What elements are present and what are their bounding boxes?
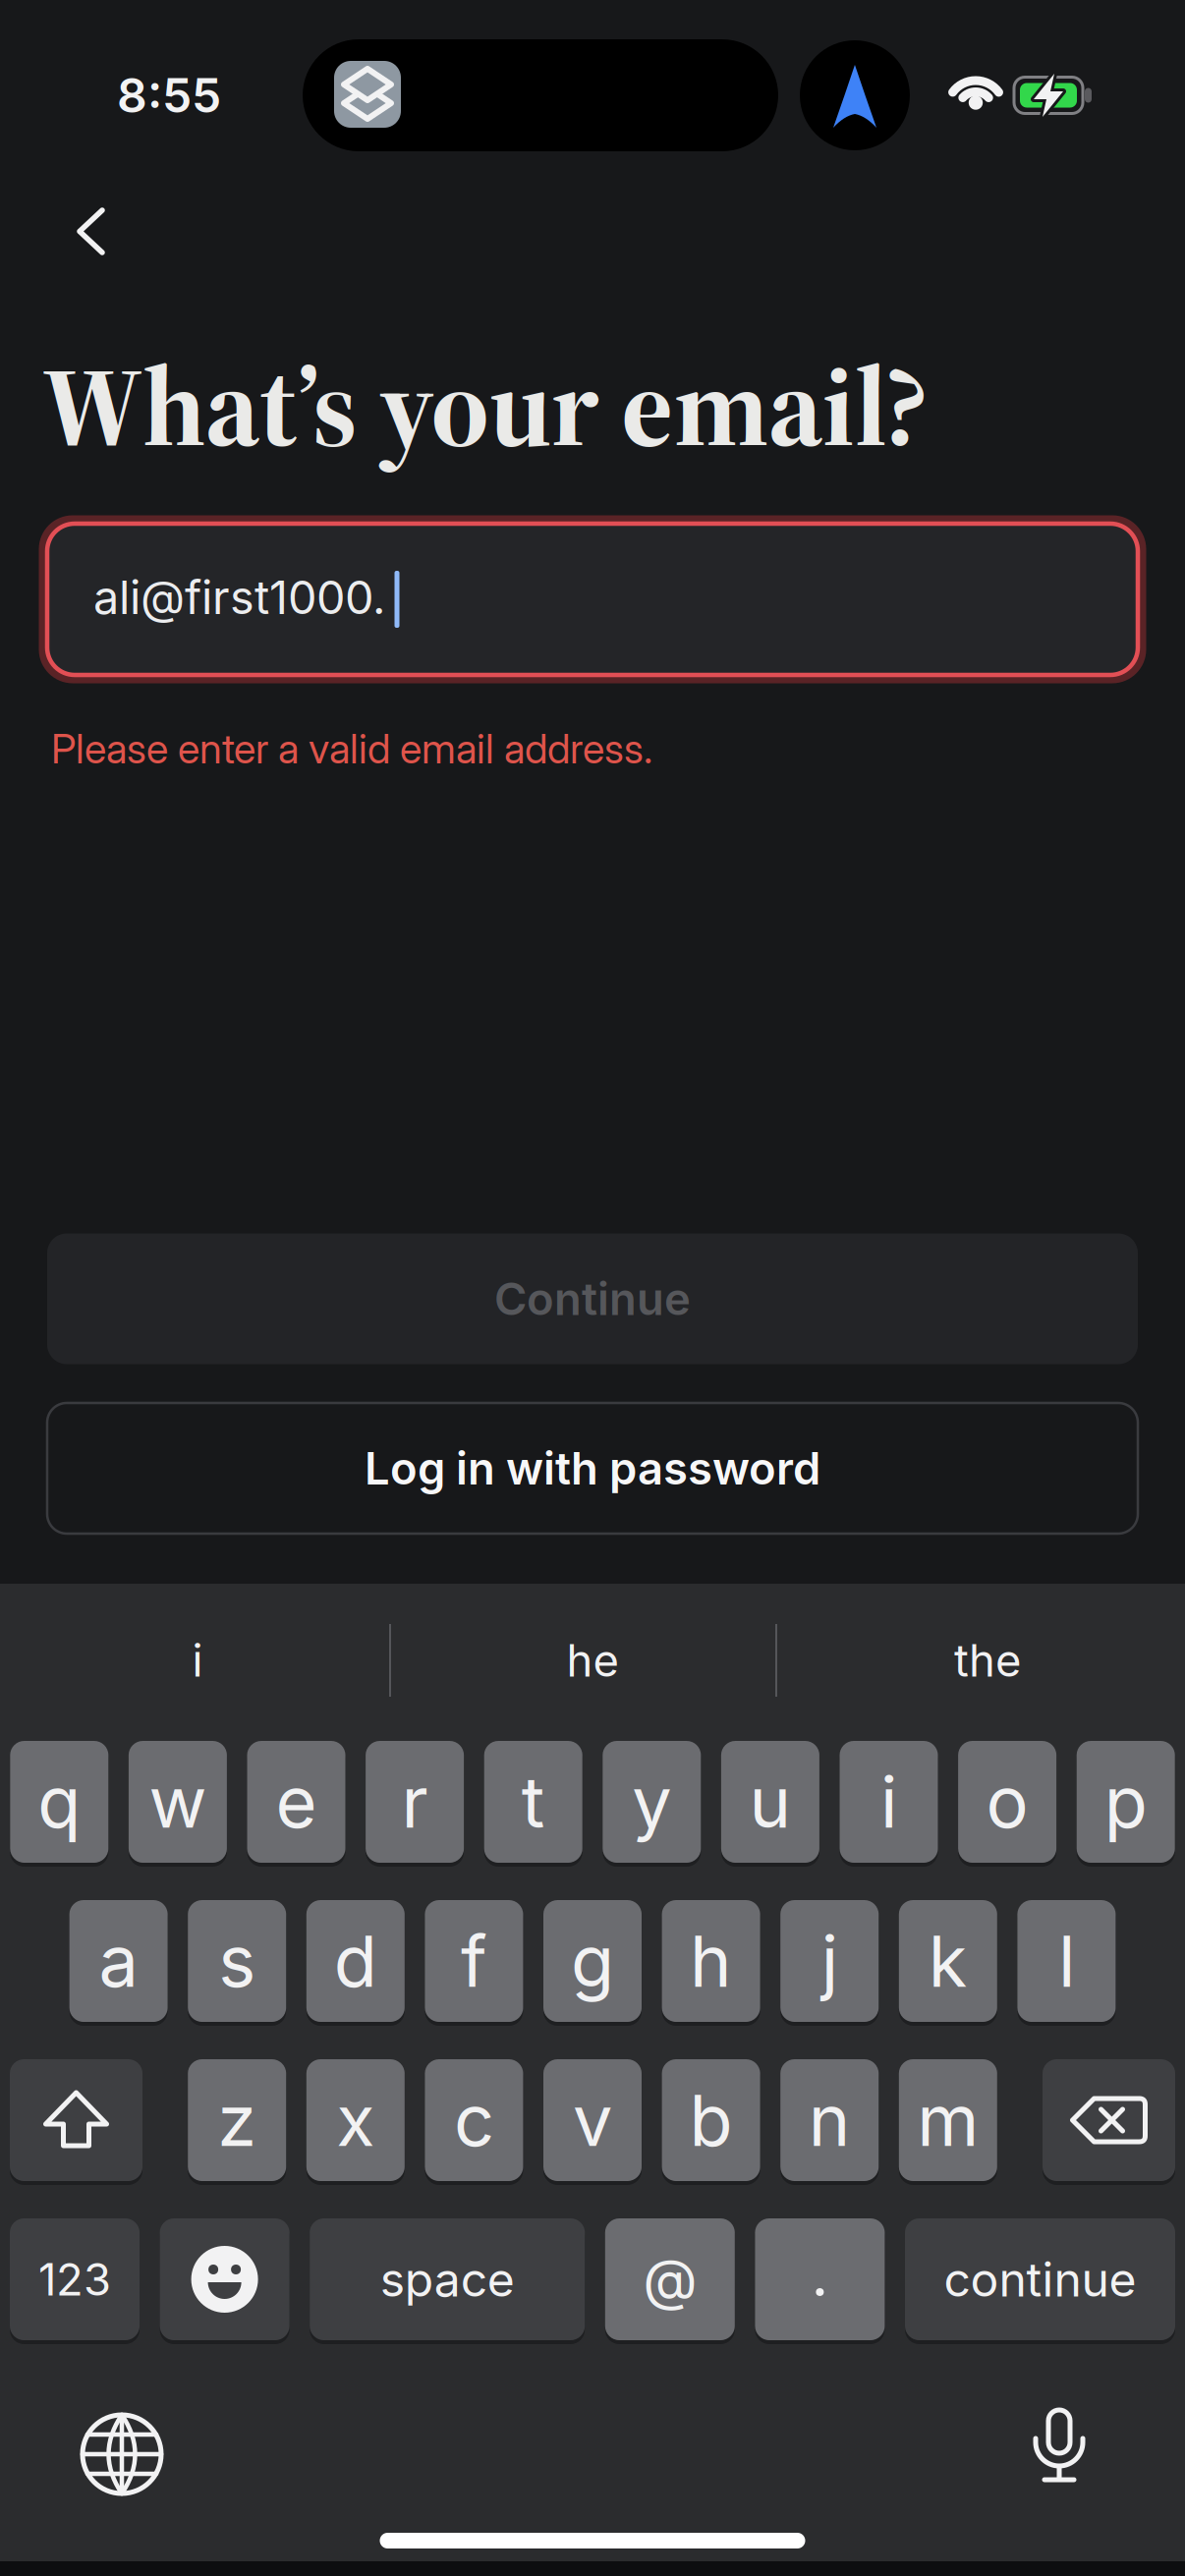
button[interactable]: f (425, 1900, 523, 2022)
button[interactable]: r (366, 1741, 464, 1863)
button[interactable]: u (721, 1741, 819, 1863)
button[interactable]: t (484, 1741, 582, 1863)
button[interactable]: v (543, 2059, 642, 2181)
button[interactable]: Log in with password (47, 1403, 1138, 1534)
staticText: m (917, 2078, 979, 2162)
button[interactable]: j (780, 1900, 879, 2022)
staticText: f (461, 1919, 487, 2003)
staticText: ali@first1000. (93, 570, 385, 624)
staticText: g (571, 1919, 614, 2003)
staticText: h (690, 1919, 732, 2003)
staticText: i (880, 1760, 897, 1843)
button[interactable] (79, 2411, 165, 2497)
staticText: Log in with password (365, 1442, 820, 1495)
staticText: q (38, 1760, 81, 1843)
staticText: d (334, 1919, 377, 2003)
button[interactable] (1025, 2403, 1094, 2497)
staticText: u (749, 1760, 791, 1843)
button[interactable]: p (1077, 1741, 1175, 1863)
staticText: c (454, 2078, 494, 2162)
staticText: j (821, 1919, 838, 2003)
button[interactable]: g (543, 1900, 642, 2022)
staticText: a (99, 1919, 138, 2003)
staticText: x (336, 2078, 375, 2162)
button[interactable]: c (425, 2059, 523, 2181)
button[interactable]: e (247, 1741, 345, 1863)
button[interactable]: b (662, 2059, 760, 2181)
button[interactable] (10, 2059, 142, 2181)
staticText: w (149, 1760, 207, 1843)
button[interactable]: a (69, 1900, 168, 2022)
staticText: Continue (494, 1273, 691, 1325)
button[interactable]: n (780, 2059, 879, 2181)
staticText: he (566, 1634, 619, 1687)
button[interactable]: space (310, 2218, 585, 2340)
button[interactable] (1043, 2059, 1175, 2181)
button[interactable] (160, 2218, 289, 2340)
button[interactable]: @ (605, 2218, 735, 2340)
button[interactable] (0, 0, 1185, 2576)
button[interactable]: w (129, 1741, 227, 1863)
button[interactable]: z (188, 2059, 286, 2181)
button[interactable]: y (603, 1741, 701, 1863)
staticText: Please enter a valid email address. (51, 725, 652, 773)
staticText: z (217, 2078, 257, 2162)
staticText: t (521, 1760, 545, 1843)
staticText: k (928, 1919, 968, 2003)
staticText: o (986, 1760, 1028, 1843)
button[interactable]: he (401, 1616, 784, 1705)
button[interactable] (755, 2218, 885, 2340)
staticText: r (401, 1760, 428, 1843)
button[interactable]: continue (905, 2218, 1175, 2340)
staticText: @ (643, 2246, 697, 2313)
staticText: i (192, 1634, 203, 1687)
button[interactable]: l (1017, 1900, 1116, 2022)
staticText: What’s your email? (42, 329, 928, 483)
staticText: 123 (38, 2253, 111, 2306)
staticText: space (380, 2251, 515, 2307)
button[interactable]: d (306, 1900, 405, 2022)
staticText: 8:55 (117, 67, 221, 123)
staticText: b (689, 2078, 733, 2162)
button[interactable]: x (306, 2059, 405, 2181)
button[interactable]: q (10, 1741, 108, 1863)
button[interactable]: k (899, 1900, 997, 2022)
button[interactable]: i (6, 1616, 389, 1705)
staticText: l (1058, 1919, 1075, 2003)
staticText: the (954, 1634, 1021, 1687)
button[interactable]: m (899, 2059, 997, 2181)
staticText: v (573, 2078, 612, 2162)
staticText: p (1104, 1760, 1147, 1843)
staticText: continue (944, 2251, 1136, 2307)
staticText: n (808, 2078, 851, 2162)
staticText: s (218, 1919, 256, 2003)
staticText: y (632, 1760, 671, 1843)
button[interactable]: o (958, 1741, 1056, 1863)
button[interactable]: 123 (10, 2218, 140, 2340)
button[interactable]: h (662, 1900, 760, 2022)
button[interactable]: Continue (47, 1233, 1138, 1364)
button[interactable]: the (796, 1616, 1179, 1705)
staticText: e (276, 1760, 317, 1843)
button[interactable]: i (840, 1741, 938, 1863)
button[interactable]: s (188, 1900, 286, 2022)
